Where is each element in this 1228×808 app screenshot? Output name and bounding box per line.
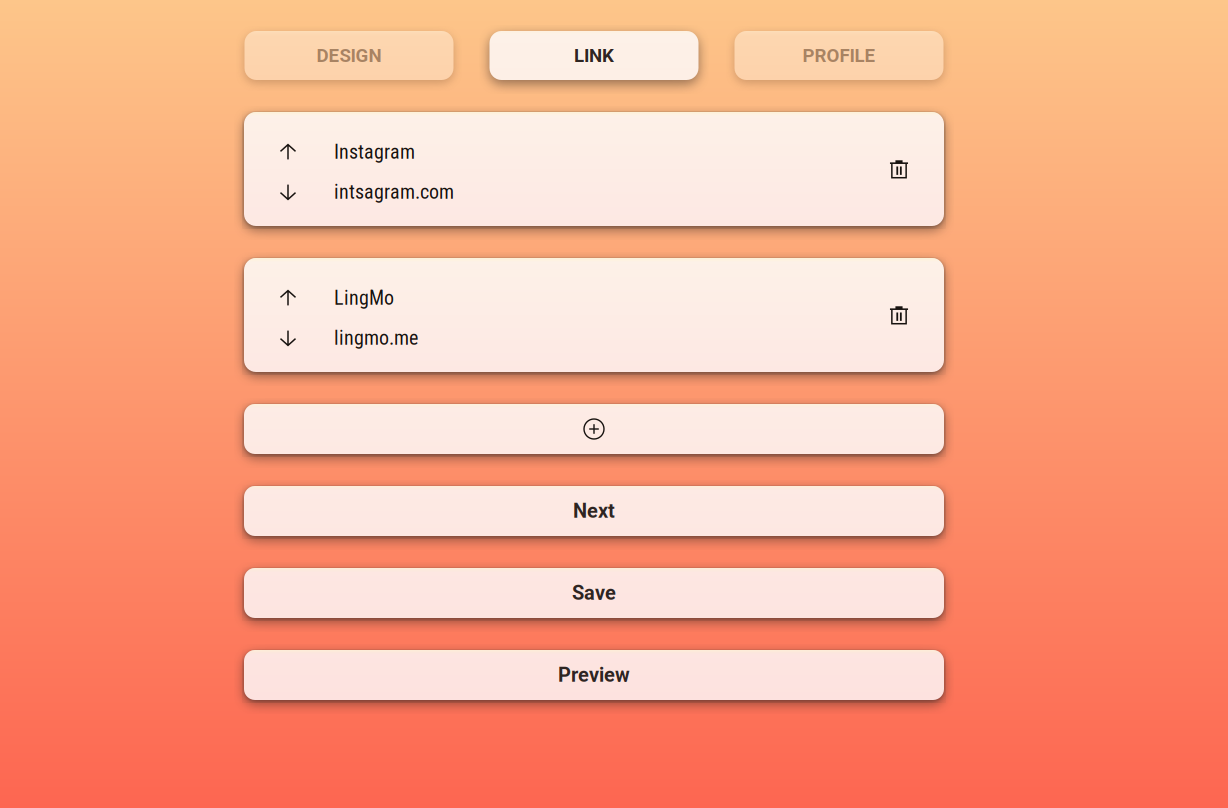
button[interactable]: PROFILE xyxy=(734,31,943,80)
button[interactable]: DESIGN xyxy=(244,31,453,80)
button[interactable]: Next xyxy=(244,486,944,536)
staticText: Next xyxy=(573,499,615,523)
staticText: lingmo.me xyxy=(334,326,418,350)
staticText: Preview xyxy=(558,663,630,687)
staticText: intsagram.com xyxy=(334,180,454,204)
staticText: LINK xyxy=(574,45,614,66)
button[interactable]: Preview xyxy=(244,650,944,700)
staticText: Save xyxy=(572,581,616,605)
staticText: Instagram xyxy=(334,140,415,164)
button[interactable]: Delete Instagram xyxy=(854,112,944,226)
button[interactable]: LINK xyxy=(489,31,698,80)
button[interactable]: Move Instagram up xyxy=(280,142,296,162)
button[interactable]: Add link xyxy=(244,404,944,454)
button[interactable]: Move LingMo up xyxy=(280,288,296,308)
button[interactable]: Move Instagram down xyxy=(280,182,296,202)
staticText: DESIGN xyxy=(316,45,381,66)
staticText: LingMo xyxy=(334,286,394,310)
button[interactable]: Save xyxy=(244,568,944,618)
button[interactable]: Delete LingMo xyxy=(854,258,944,372)
button[interactable]: Move LingMo down xyxy=(280,328,296,348)
staticText: PROFILE xyxy=(802,45,875,66)
